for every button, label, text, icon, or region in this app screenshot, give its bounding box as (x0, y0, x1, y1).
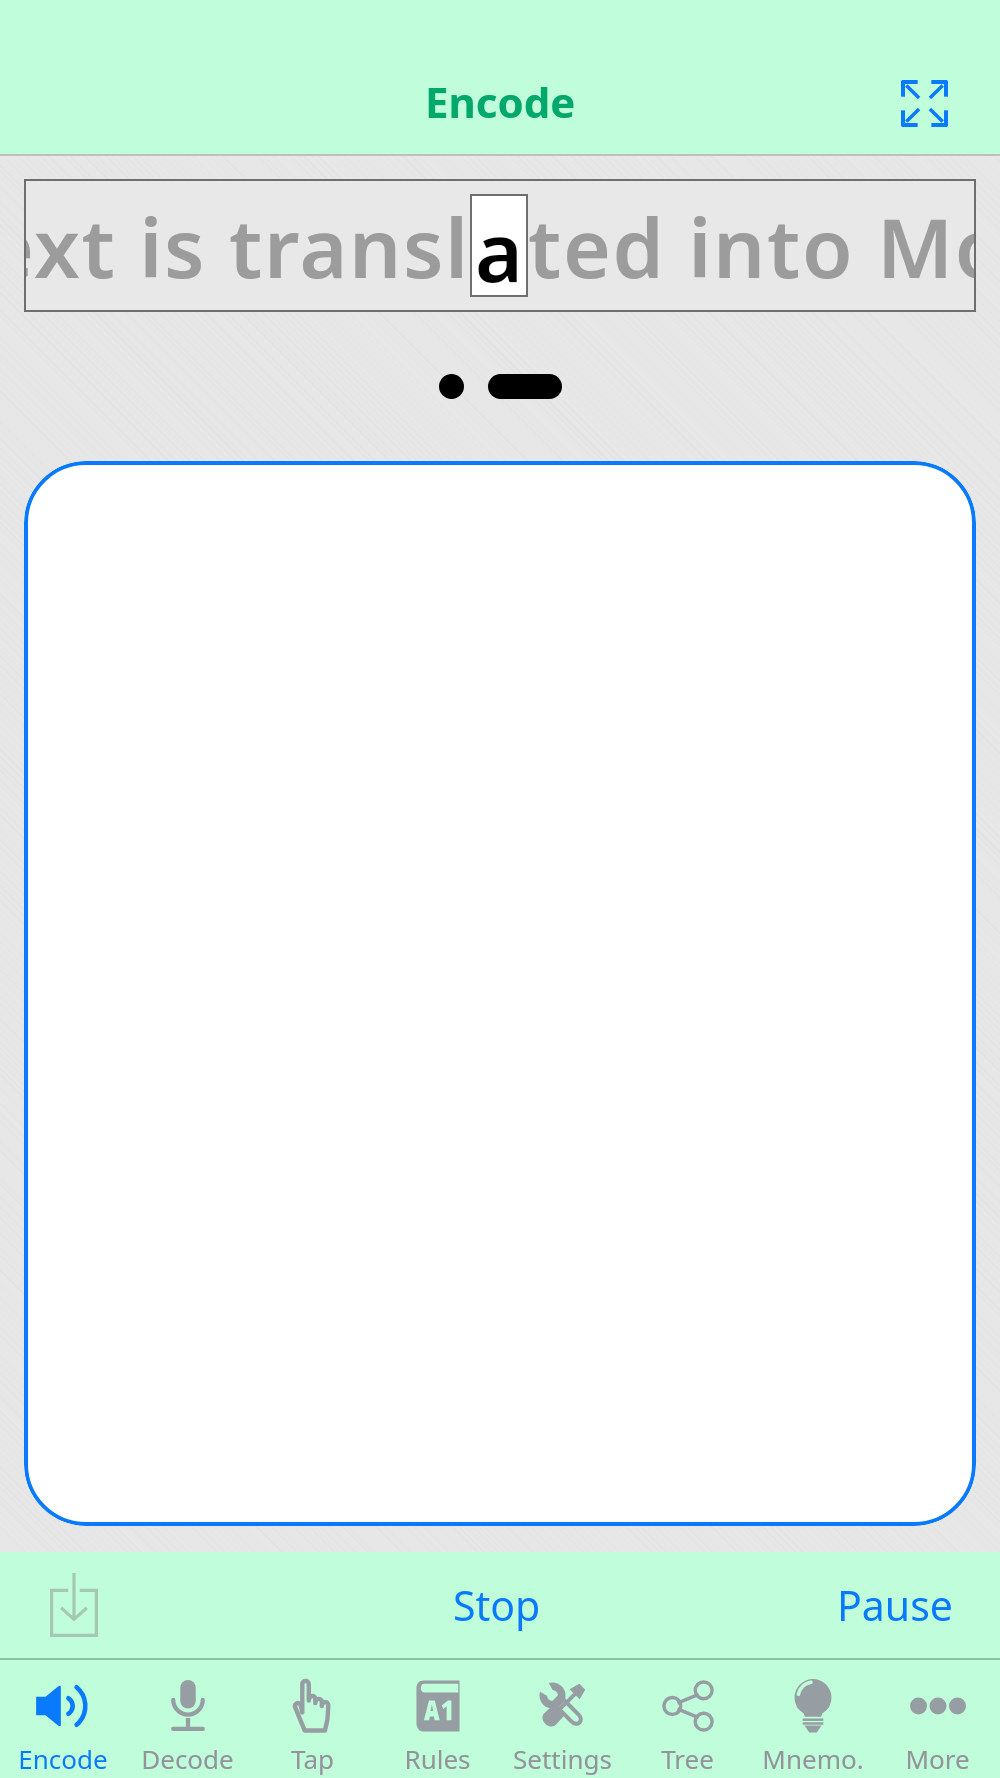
button[interactable] (24, 461, 976, 1526)
button[interactable]: Stop (425, 1563, 569, 1647)
staticText: Tree (661, 1741, 714, 1776)
button[interactable]: Tap (250, 1660, 375, 1778)
staticText: Rules (404, 1741, 471, 1776)
staticText: Encode (18, 1741, 108, 1776)
staticText: Decode (141, 1741, 234, 1776)
button[interactable]: Encode (0, 1660, 125, 1778)
button[interactable]: Mnemo. (750, 1660, 875, 1778)
button[interactable]: Save (37, 1568, 111, 1642)
staticText: Settings (513, 1741, 612, 1776)
staticText: More (905, 1741, 970, 1776)
button[interactable]: More (875, 1660, 1000, 1778)
button[interactable]: Rules (375, 1660, 500, 1778)
button[interactable]: ext is transl (24, 179, 976, 312)
staticText: Pause (837, 1577, 953, 1633)
button[interactable]: Decode (125, 1660, 250, 1778)
staticText: Stop (453, 1577, 541, 1633)
staticText: ext is transl (24, 190, 470, 302)
button[interactable]: Settings (500, 1660, 625, 1778)
staticText: ted into Mo (528, 190, 976, 302)
button[interactable]: Tree (625, 1660, 750, 1778)
button[interactable]: Pause (821, 1563, 969, 1647)
button[interactable]: Fullscreen (886, 65, 962, 141)
staticText: Encode (425, 73, 576, 130)
staticText: a (475, 194, 523, 297)
staticText: Mnemo. (762, 1741, 864, 1776)
staticText: Tap (291, 1741, 334, 1776)
